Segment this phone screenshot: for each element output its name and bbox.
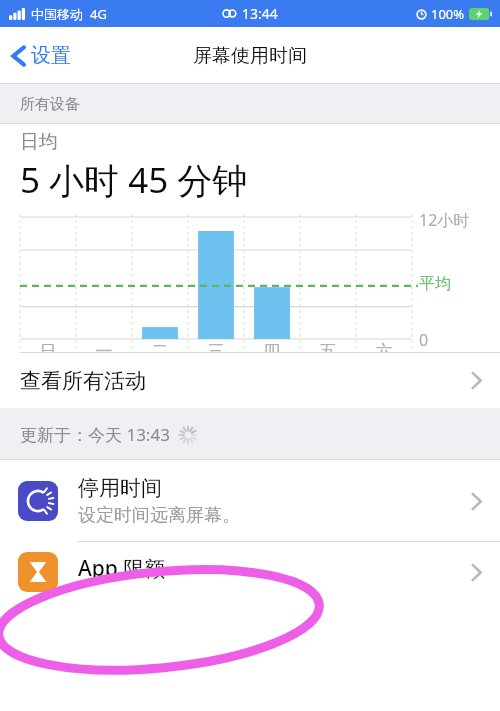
button[interactable]: 查看所有活动 xyxy=(0,353,500,408)
staticText: 100% xyxy=(431,5,465,23)
button[interactable]: 停用时间 xyxy=(0,460,500,542)
staticText: 0 xyxy=(419,329,429,351)
staticText: 二 xyxy=(132,341,188,362)
staticText: 设定时间远离屏幕。 xyxy=(78,504,240,527)
staticText: 更新于：今天 13:43 xyxy=(20,423,170,446)
staticText: 中国移动 xyxy=(31,6,83,22)
staticText: 五 xyxy=(300,341,356,362)
button[interactable]: App 限额 xyxy=(0,542,500,711)
staticText: 日均 xyxy=(20,130,58,154)
staticText: 三 xyxy=(188,341,244,362)
staticText: App 限额 xyxy=(78,554,166,583)
staticText: 查看所有活动 xyxy=(20,368,146,394)
staticText: 四 xyxy=(244,341,300,362)
staticText: 屏幕使用时间 xyxy=(193,44,307,68)
staticText: 所有设备 xyxy=(20,95,80,114)
staticText: 5 小时 45 分钟 xyxy=(20,156,248,204)
staticText: 平均 xyxy=(419,274,451,294)
staticText: 13:44 xyxy=(242,4,278,23)
staticText: 六 xyxy=(356,341,412,362)
staticText: 设置 xyxy=(31,43,71,68)
staticText: 停用时间 xyxy=(78,475,162,501)
staticText: 12小时 xyxy=(419,209,470,231)
staticText: 4G xyxy=(90,5,107,23)
staticText: 一 xyxy=(76,341,132,362)
staticText: 日 xyxy=(20,341,76,362)
button[interactable]: 设置 xyxy=(0,37,81,74)
